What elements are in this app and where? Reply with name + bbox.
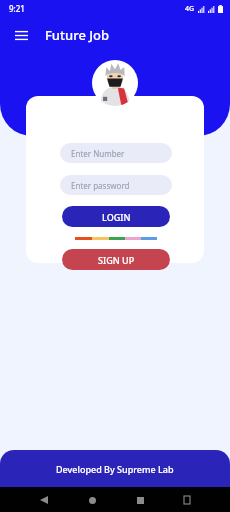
button[interactable]: Menu	[8, 22, 34, 48]
staticText: Enter Number	[71, 148, 125, 159]
staticText: Developed By Supreme Lab	[56, 463, 174, 475]
button[interactable]: Home	[84, 492, 100, 508]
button[interactable]: Profile avatar	[92, 60, 138, 106]
staticText: SIGN UP	[98, 254, 135, 266]
staticText: 9:21	[9, 3, 25, 14]
button[interactable]: Rotate	[180, 493, 194, 507]
button[interactable]: Recents	[132, 492, 148, 508]
staticText: LOGIN	[102, 211, 131, 223]
button[interactable]: Enter password	[60, 175, 172, 195]
button[interactable]: SIGN UP	[62, 249, 170, 270]
button[interactable]: LOGIN	[62, 206, 170, 227]
button[interactable]: Enter Number	[60, 143, 172, 163]
staticText: Enter password	[71, 180, 130, 191]
button[interactable]: Developed By Supreme Lab	[0, 450, 230, 487]
staticText: 4G	[185, 4, 195, 14]
button[interactable]: Back	[36, 492, 52, 508]
staticText: Future Job	[45, 26, 109, 44]
